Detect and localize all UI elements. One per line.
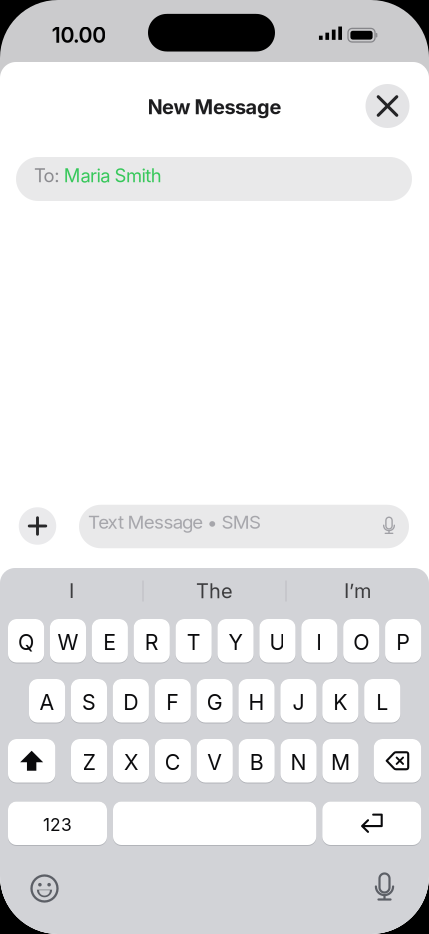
- button[interactable]: X: [113, 739, 149, 783]
- button[interactable]: V: [197, 739, 233, 783]
- staticText: Z: [82, 750, 95, 775]
- staticText: N: [291, 750, 307, 775]
- button[interactable]: K: [322, 679, 358, 723]
- button[interactable]: O: [343, 619, 379, 663]
- button[interactable]: 123: [8, 801, 107, 846]
- button[interactable]: I: [11, 574, 131, 608]
- staticText: B: [250, 750, 264, 775]
- button[interactable]: U: [259, 619, 295, 663]
- button[interactable]: N: [280, 739, 317, 783]
- staticText: 123: [43, 814, 72, 835]
- staticText: T: [187, 630, 201, 655]
- staticText: I: [316, 630, 322, 655]
- button[interactable]: To:: [16, 157, 412, 201]
- button[interactable]: J: [280, 679, 316, 723]
- staticText: M: [331, 750, 350, 775]
- button[interactable]: B: [239, 739, 275, 783]
- staticText: D: [123, 690, 138, 715]
- staticText: G: [207, 690, 223, 715]
- button[interactable]: M: [322, 739, 358, 783]
- staticText: J: [292, 690, 304, 715]
- button[interactable]: I’m: [297, 574, 417, 608]
- staticText: L: [376, 690, 388, 715]
- staticText: W: [57, 630, 78, 655]
- button[interactable]: C: [155, 739, 191, 783]
- staticText: A: [39, 690, 54, 715]
- button[interactable]: P: [385, 619, 421, 663]
- staticText: C: [165, 750, 181, 775]
- button[interactable]: Shift: [8, 739, 55, 783]
- staticText: H: [249, 690, 265, 715]
- staticText: I’m: [344, 579, 371, 603]
- staticText: U: [269, 630, 285, 655]
- button[interactable]: W: [50, 619, 86, 663]
- button[interactable]: G: [197, 679, 233, 723]
- staticText: V: [207, 750, 222, 775]
- staticText: O: [353, 630, 369, 655]
- staticText: Q: [18, 630, 34, 655]
- staticText: F: [166, 690, 179, 715]
- staticText: Text Message • SMS: [88, 511, 261, 533]
- button[interactable]: I: [301, 619, 337, 663]
- staticText: To:: [34, 164, 64, 187]
- button[interactable]: Add attachment: [19, 507, 56, 545]
- button[interactable]: H: [238, 679, 275, 723]
- button[interactable]: Dictation: [369, 872, 399, 904]
- button[interactable]: E: [92, 619, 128, 663]
- button[interactable]: L: [364, 679, 400, 723]
- staticText: E: [103, 630, 116, 655]
- button[interactable]: Emoji: [29, 873, 59, 903]
- staticText: The: [196, 579, 233, 603]
- staticText: P: [396, 630, 410, 655]
- staticText: K: [333, 690, 347, 715]
- button[interactable]: Close: [365, 84, 409, 128]
- button[interactable]: [113, 801, 316, 846]
- button[interactable]: T: [176, 619, 212, 663]
- staticText: X: [124, 750, 138, 775]
- button[interactable]: Text Message: [79, 505, 409, 548]
- staticText: I: [69, 579, 74, 603]
- staticText: 10.00: [52, 22, 106, 48]
- button[interactable]: D: [113, 679, 149, 723]
- button[interactable]: Delete: [374, 739, 421, 783]
- staticText: R: [145, 630, 159, 655]
- button[interactable]: Y: [217, 619, 254, 663]
- staticText: New Message: [147, 95, 281, 119]
- button[interactable]: Return: [322, 801, 421, 846]
- button[interactable]: A: [29, 679, 65, 723]
- button[interactable]: Q: [8, 619, 44, 663]
- button[interactable]: R: [134, 619, 170, 663]
- button[interactable]: The: [154, 574, 274, 608]
- button[interactable]: Z: [71, 739, 107, 783]
- button[interactable]: F: [155, 679, 191, 723]
- staticText: Y: [229, 630, 243, 655]
- staticText: Maria Smith: [64, 164, 162, 187]
- staticText: S: [82, 690, 96, 715]
- button[interactable]: S: [71, 679, 107, 723]
